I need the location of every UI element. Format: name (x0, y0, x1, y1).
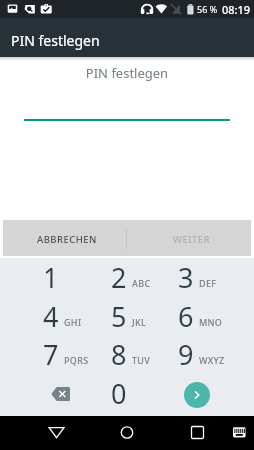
staticText: 08:19 (222, 2, 251, 17)
staticText: 56 % (197, 3, 218, 15)
button[interactable]: 6 (169, 297, 254, 336)
button[interactable]: 5 (85, 297, 170, 336)
button[interactable]: Delete (0, 374, 85, 413)
staticText: MNO (199, 316, 223, 328)
button[interactable]: WEITER (127, 220, 251, 256)
staticText: JKL (132, 316, 147, 328)
button[interactable]: 4 (0, 297, 85, 336)
staticText: 8 (111, 336, 127, 373)
button[interactable]: 7 (0, 335, 85, 374)
button[interactable]: 0 (85, 374, 170, 413)
staticText: 5 (111, 298, 127, 335)
button[interactable]: 9 (169, 335, 254, 374)
staticText: PQRS (64, 354, 89, 366)
button[interactable]: 2 (85, 258, 170, 297)
staticText: 3 (178, 259, 194, 296)
staticText: PIN festlegen (11, 31, 100, 50)
staticText: GHI (64, 316, 82, 328)
staticText: DEF (199, 277, 217, 289)
staticText: WEITER (173, 233, 210, 246)
staticText: TUV (132, 354, 151, 366)
button[interactable]: Enter (184, 382, 210, 408)
staticText: 0 (111, 375, 127, 412)
staticText: ABBRECHEN (37, 233, 97, 246)
staticText: 1 (43, 259, 59, 296)
staticText: 4 (43, 298, 59, 335)
staticText: PIN festlegen (0, 64, 254, 82)
button[interactable]: ABBRECHEN (3, 220, 127, 256)
staticText: WXYZ (199, 354, 225, 366)
staticText: 2 (111, 259, 127, 296)
button[interactable]: 3 (169, 258, 254, 297)
staticText: 7 (43, 336, 59, 373)
button[interactable]: 8 (85, 335, 170, 374)
staticText: ABC (132, 277, 151, 289)
button[interactable]: 1 (0, 258, 85, 297)
staticText: 9 (178, 336, 194, 373)
staticText: 6 (178, 298, 194, 335)
